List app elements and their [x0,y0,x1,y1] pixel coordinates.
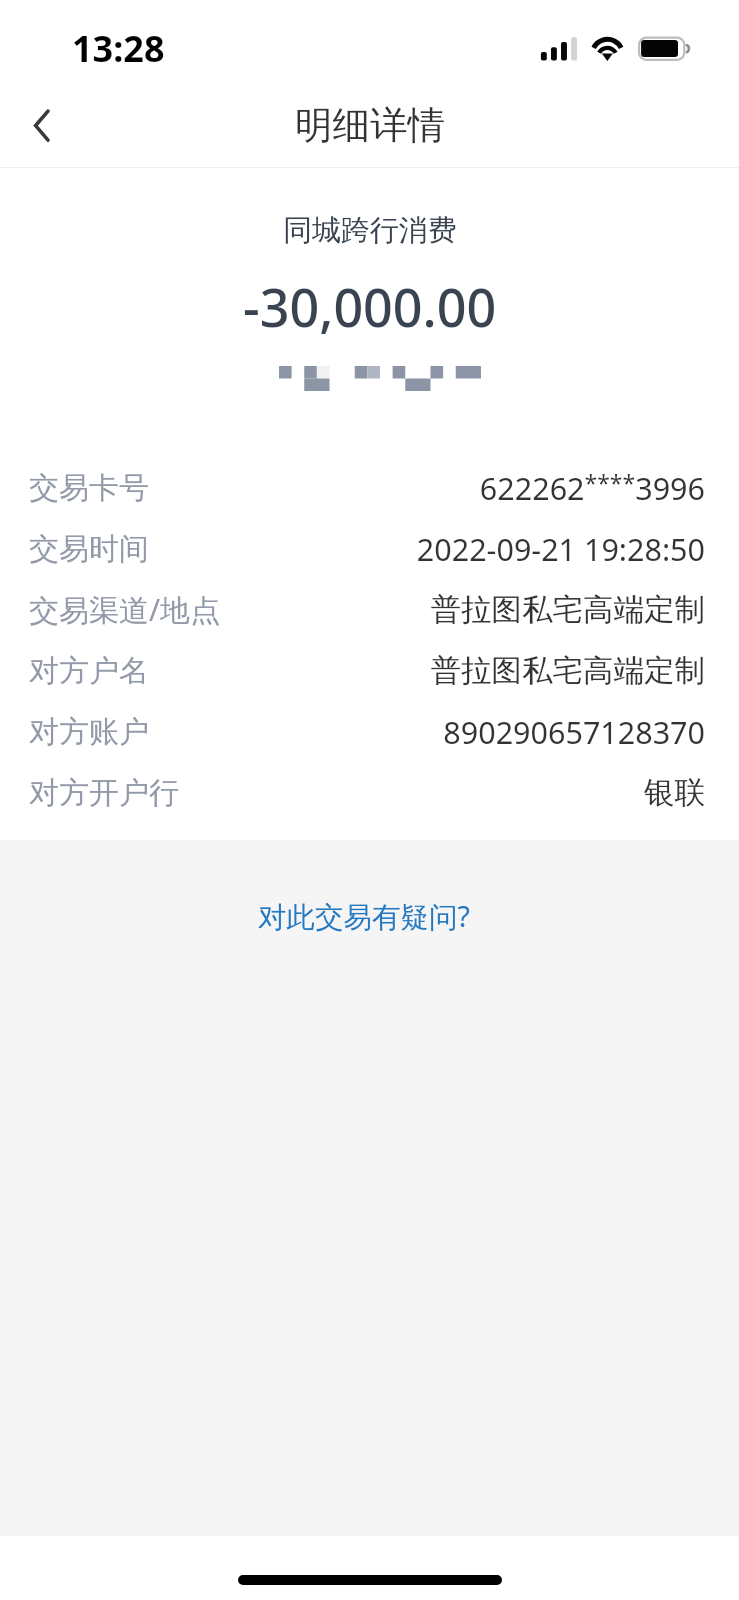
staticText: 13:28 [72,24,165,73]
staticText: 890290657128370 [443,711,705,753]
staticText: 2022-09-21 19:28:50 [416,528,705,570]
staticText: 交易卡号 [29,469,149,507]
button[interactable]: 对方账户 [0,701,739,762]
staticText: -30,000.00 [243,271,497,342]
staticText: 明细详情 [295,102,445,149]
staticText: 622262****3996 [479,467,705,509]
staticText: 普拉图私宅高端定制 [430,652,705,690]
button[interactable]: 交易时间 [0,518,739,579]
button[interactable]: 对方开户行 [0,762,739,823]
staticText: 对此交易有疑问? [258,897,470,936]
staticText: 交易时间 [29,530,149,568]
staticText: 普拉图私宅高端定制 [430,591,705,629]
staticText: 对方户名 [29,652,149,690]
staticText: 同城跨行消费 [283,212,457,249]
staticText: 银联 [644,774,705,812]
staticText: 对方开户行 [29,774,179,812]
button[interactable]: 交易卡号 [0,457,739,518]
staticText: 对方账户 [29,713,149,751]
button[interactable]: Back [8,100,64,156]
button[interactable]: 交易渠道/地点 [0,579,739,640]
button[interactable]: 对方户名 [0,640,739,701]
staticText: 交易渠道/地点 [29,589,221,630]
button[interactable]: 对此交易有疑问? [244,889,484,944]
